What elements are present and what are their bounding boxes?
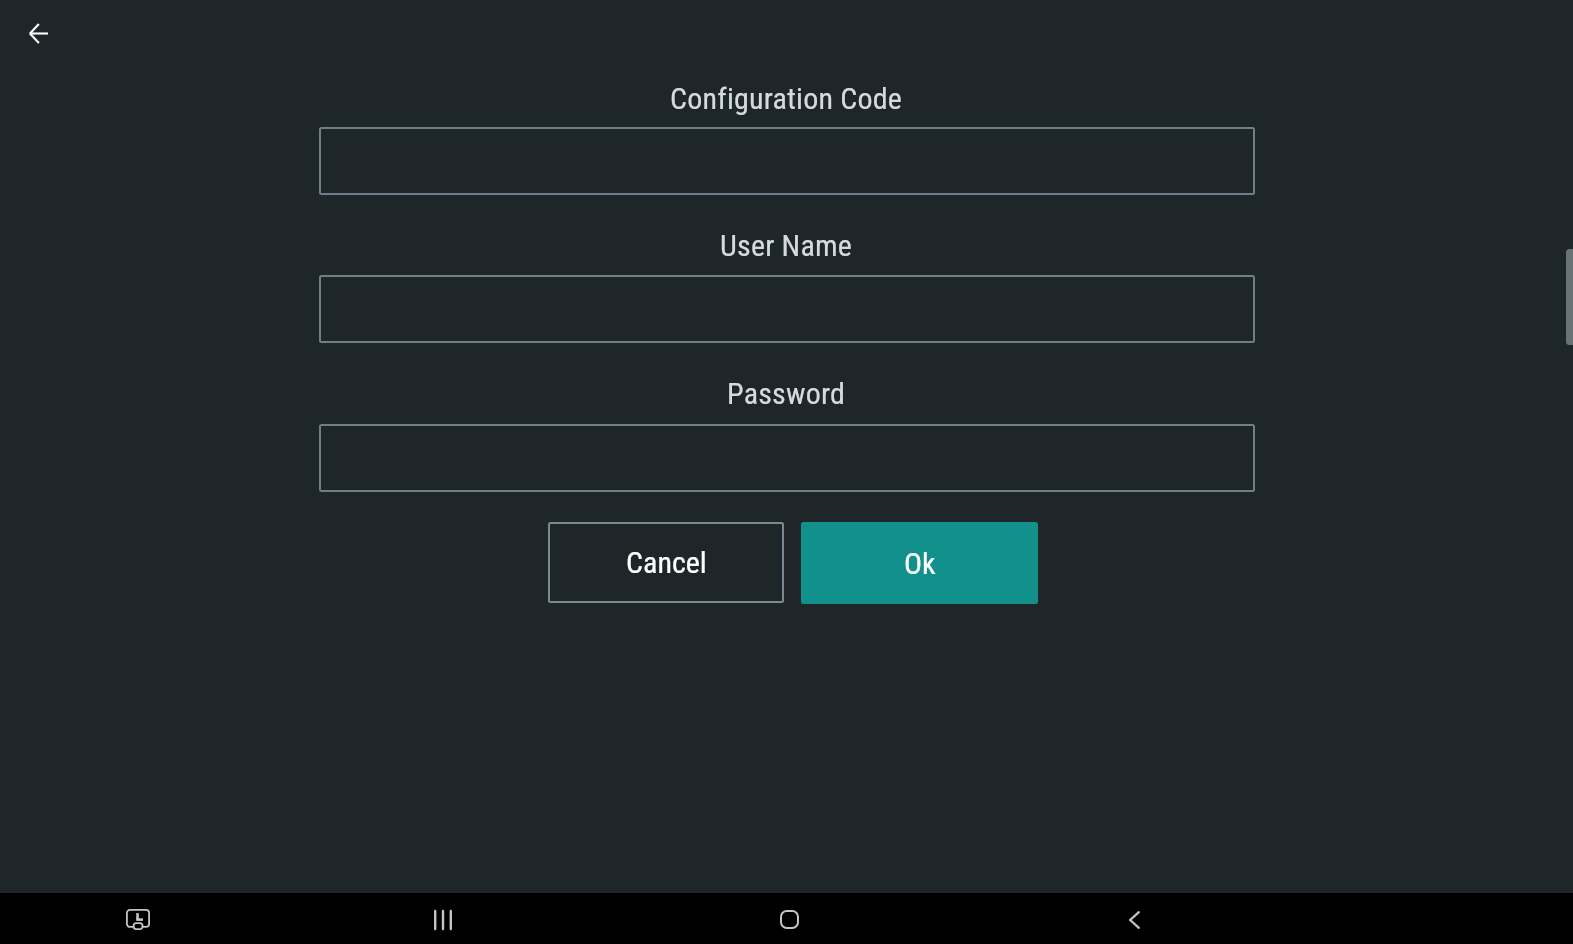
button[interactable]: Home bbox=[762, 893, 816, 944]
button[interactable]: Back bbox=[1107, 893, 1161, 944]
staticText: Configuration Code bbox=[670, 81, 903, 116]
button[interactable]: Navigate up bbox=[14, 9, 62, 57]
button[interactable]: Cancel bbox=[548, 522, 784, 603]
button[interactable]: Recent apps bbox=[416, 893, 470, 944]
staticText: Ok bbox=[904, 546, 936, 581]
staticText: Password bbox=[727, 376, 846, 411]
button[interactable] bbox=[319, 275, 1255, 343]
button[interactable] bbox=[319, 127, 1255, 195]
staticText: User Name bbox=[720, 228, 853, 263]
button[interactable] bbox=[319, 424, 1255, 492]
button[interactable]: Ok bbox=[801, 522, 1038, 604]
staticText: Cancel bbox=[626, 545, 707, 580]
button[interactable]: Screen timeout bbox=[111, 893, 165, 944]
